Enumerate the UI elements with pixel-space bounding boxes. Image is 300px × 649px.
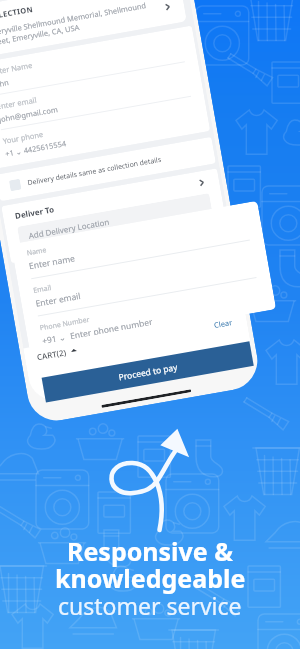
staticText: CART(2)	[36, 346, 67, 362]
staticText: Proceed to pay	[118, 361, 179, 383]
staticText: Add Delivery Location	[28, 216, 110, 241]
staticText: Deliver To	[14, 178, 197, 221]
staticText: John	[0, 77, 10, 90]
button[interactable]: Deliver To	[14, 176, 208, 221]
staticText: Enter email	[0, 94, 38, 111]
staticText: Enter email	[35, 290, 82, 310]
staticText: Delivery details same as collection deta…	[27, 155, 162, 188]
staticText: +91 ⌄ Enter phone number	[41, 316, 153, 344]
staticText: Enter name	[28, 252, 76, 272]
button[interactable]: Add Delivery Location	[17, 193, 213, 247]
button[interactable]: COLLECTION	[0, 0, 176, 56]
staticText: knowledgeable	[55, 561, 246, 595]
button[interactable]: Clear	[213, 317, 234, 330]
staticText: Your phone	[2, 129, 44, 146]
staticText: Name	[26, 245, 47, 258]
staticText: Enter Name	[0, 60, 33, 77]
staticText: customer service	[58, 590, 242, 621]
staticText: john@gmail.com	[0, 104, 59, 124]
button[interactable]: CART(2)	[36, 344, 78, 362]
staticText: Emeryville Shellmound Memorial, Shellmou…	[0, 0, 158, 48]
staticText: Phone Number	[39, 315, 91, 333]
staticText: COLLECTION	[0, 4, 34, 22]
button[interactable]: Proceed to pay	[42, 341, 254, 402]
button[interactable]: Delivery details same as collection deta…	[9, 147, 203, 191]
staticText: Email	[32, 283, 52, 296]
staticText: +1 ⌄ 4425615554	[4, 138, 67, 159]
staticText: Responsive &	[67, 534, 234, 568]
